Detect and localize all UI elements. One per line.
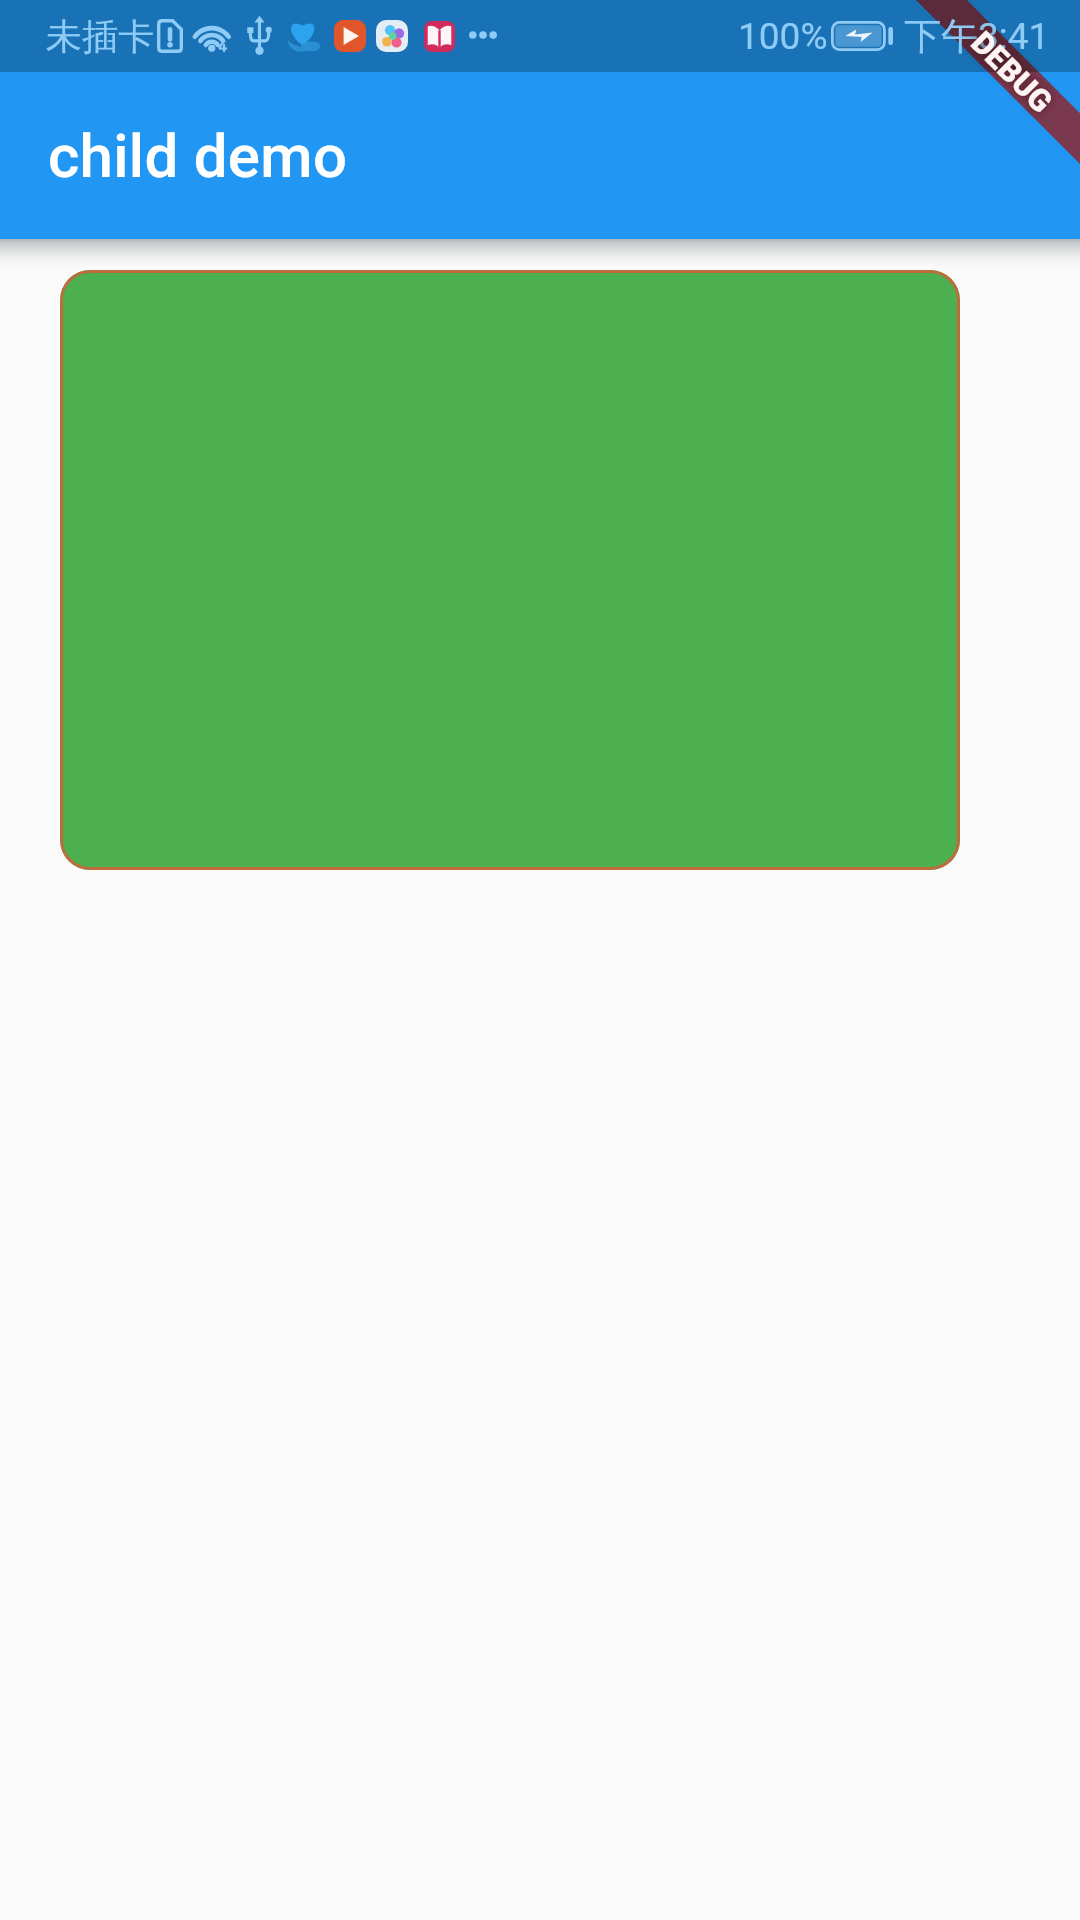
staticText: 下午3:41	[904, 13, 1050, 60]
staticText: 未插卡	[46, 14, 154, 59]
staticText: 100%	[738, 15, 828, 58]
button[interactable]: Green container	[60, 270, 960, 870]
other: Debug banner	[0, 0, 1080, 1920]
staticText: child demo	[48, 121, 348, 191]
